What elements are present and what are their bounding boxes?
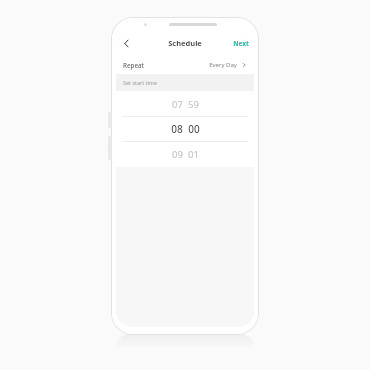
button[interactable]: 09 bbox=[116, 142, 254, 166]
button[interactable]: Next bbox=[228, 36, 254, 51]
staticText: Every Day bbox=[209, 61, 237, 69]
staticText: 09 bbox=[172, 148, 183, 161]
staticText: Next bbox=[233, 39, 249, 48]
staticText: 08 bbox=[171, 122, 183, 136]
staticText: 00 bbox=[188, 122, 200, 136]
staticText: Schedule bbox=[168, 38, 202, 48]
staticText: Repeat bbox=[123, 61, 144, 69]
staticText: Set start time bbox=[123, 79, 157, 86]
staticText: 01 bbox=[188, 148, 199, 161]
button[interactable]: 08 bbox=[116, 117, 254, 141]
button[interactable]: 07 bbox=[116, 92, 254, 116]
staticText: 07 bbox=[172, 98, 183, 111]
button[interactable]: Repeat bbox=[116, 55, 254, 74]
button[interactable]: Back bbox=[116, 33, 136, 53]
staticText: 59 bbox=[188, 98, 199, 111]
